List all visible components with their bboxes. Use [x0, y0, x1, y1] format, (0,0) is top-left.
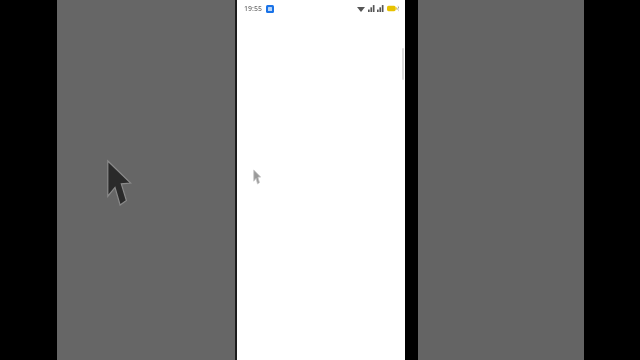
other: Wi-Fi: [357, 5, 365, 12]
other: Mobile signal: [377, 5, 384, 12]
other: Mobile signal: [368, 5, 375, 12]
staticText: 19:55: [244, 4, 262, 14]
other: Battery saver: [387, 5, 399, 12]
